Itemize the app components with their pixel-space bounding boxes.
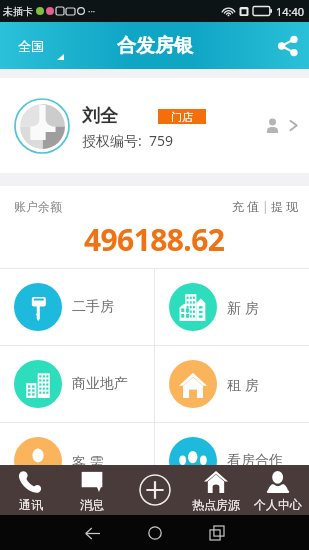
- button[interactable]: 通讯: [0, 465, 61, 515]
- button[interactable]: 刘全: [0, 78, 309, 173]
- button[interactable]: Recents: [203, 519, 231, 547]
- staticText: 门店: [171, 110, 193, 124]
- staticText: 账户余额: [14, 199, 62, 214]
- staticText: 看房合作: [227, 452, 283, 470]
- button[interactable]: Home: [141, 519, 169, 547]
- staticText: 租 房: [227, 375, 259, 394]
- staticText: 14:40: [276, 4, 305, 19]
- staticText: 客 需: [72, 452, 104, 471]
- button[interactable]: Add: [139, 474, 171, 506]
- staticText: 合发房银: [117, 34, 193, 58]
- staticText: 消息: [80, 497, 104, 512]
- staticText: 二手房: [72, 298, 114, 316]
- button[interactable]: 新 房: [155, 269, 309, 345]
- button[interactable]: 租 房: [155, 346, 309, 422]
- button[interactable]: 商业地产: [0, 346, 154, 422]
- staticText: 个人中心: [254, 497, 302, 512]
- staticText: 通讯: [19, 497, 43, 512]
- button[interactable]: Back: [78, 519, 106, 547]
- staticText: |: [262, 198, 269, 214]
- button[interactable]: 全国: [0, 30, 54, 62]
- staticText: 授权编号: 759: [82, 131, 174, 150]
- staticText: 新 房: [227, 298, 259, 317]
- staticText: 刘全: [82, 105, 118, 128]
- staticText: 商业地产: [72, 375, 128, 393]
- staticText: 全国: [18, 38, 44, 54]
- staticText: 未插卡: [3, 5, 33, 18]
- button[interactable]: 热点房源: [185, 465, 247, 515]
- staticText: 热点房源: [192, 497, 240, 512]
- staticText: 496188.62: [84, 219, 225, 260]
- button[interactable]: 客 需: [0, 423, 154, 499]
- button[interactable]: 看房合作: [155, 423, 309, 499]
- button[interactable]: 二手房: [0, 269, 154, 345]
- button[interactable]: 个人中心: [247, 465, 309, 515]
- button[interactable]: 提 现: [271, 198, 299, 214]
- button[interactable]: Share: [267, 24, 309, 68]
- button[interactable]: 消息: [61, 465, 123, 515]
- button[interactable]: 充 值: [232, 198, 260, 214]
- staticText: ···: [88, 5, 96, 17]
